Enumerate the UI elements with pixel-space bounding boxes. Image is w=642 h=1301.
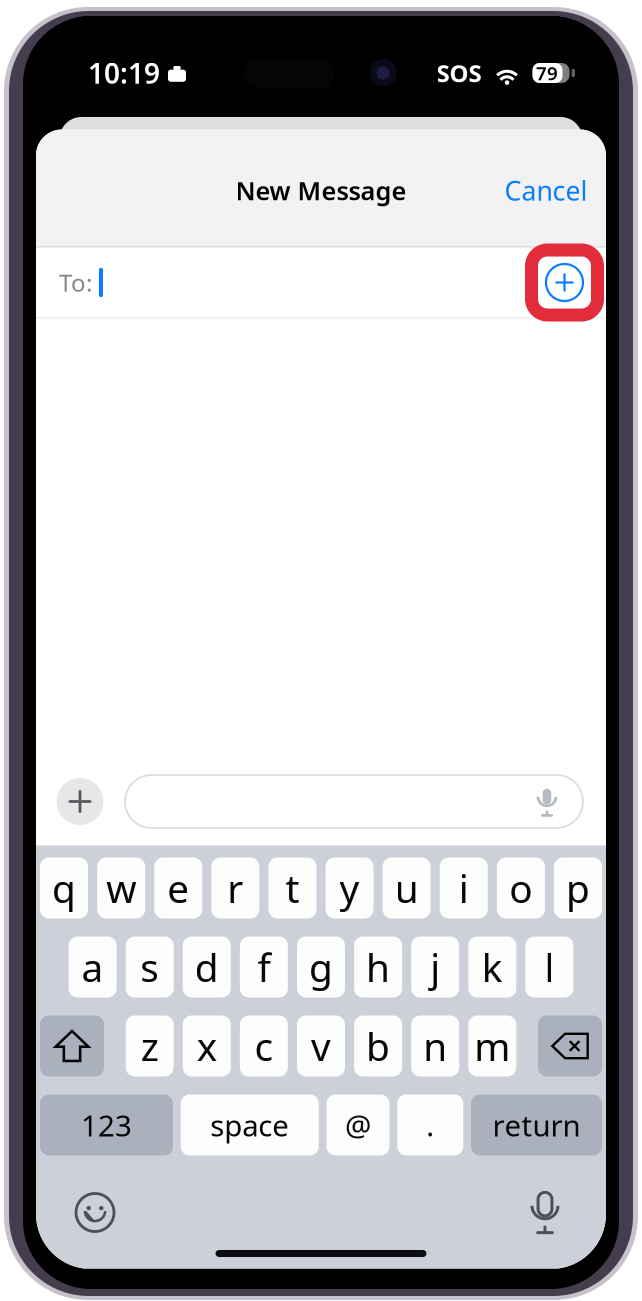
staticText: n: [423, 1020, 447, 1072]
staticText: 10:19: [88, 54, 160, 92]
staticText: l: [544, 941, 554, 993]
button[interactable]: q: [40, 857, 88, 918]
button[interactable]: y: [326, 857, 374, 918]
staticText: a: [82, 941, 104, 993]
staticText: space: [210, 1105, 289, 1144]
button[interactable]: d: [183, 936, 231, 997]
button[interactable]: r: [211, 857, 259, 918]
button[interactable]: x: [183, 1015, 231, 1076]
staticText: SOS: [436, 57, 481, 89]
staticText: To:: [59, 267, 92, 298]
button[interactable]: t: [268, 857, 316, 918]
button[interactable]: n: [411, 1015, 459, 1076]
staticText: t: [285, 862, 299, 914]
staticText: s: [140, 941, 159, 993]
button[interactable]: w: [97, 857, 145, 918]
staticText: 79: [536, 61, 558, 85]
staticText: m: [474, 1020, 510, 1072]
staticText: z: [141, 1020, 159, 1072]
button[interactable]: g: [297, 936, 345, 997]
button[interactable]: s: [126, 936, 174, 997]
button[interactable]: space: [181, 1094, 319, 1155]
staticText: r: [227, 862, 243, 914]
button[interactable]: u: [383, 857, 431, 918]
button[interactable]: p: [554, 857, 602, 918]
staticText: q: [52, 862, 76, 914]
staticText: w: [106, 862, 136, 914]
staticText: h: [366, 941, 390, 993]
button[interactable]: Emoji keyboard: [68, 1185, 122, 1239]
staticText: i: [459, 862, 469, 914]
staticText: k: [482, 941, 503, 993]
staticText: return: [492, 1105, 580, 1144]
button[interactable]: k: [468, 936, 516, 997]
button[interactable]: z: [126, 1015, 174, 1076]
staticText: e: [167, 862, 189, 914]
staticText: @: [345, 1105, 371, 1144]
staticText: j: [430, 941, 440, 993]
staticText: u: [395, 862, 419, 914]
button[interactable]: i: [440, 857, 488, 918]
button[interactable]: m: [468, 1015, 516, 1076]
button[interactable]: @: [326, 1094, 389, 1155]
staticText: v: [311, 1020, 331, 1072]
button[interactable]: Add contact: [531, 249, 597, 315]
button[interactable]: Shift: [40, 1015, 104, 1076]
staticText: x: [197, 1020, 217, 1072]
button[interactable]: a: [69, 936, 117, 997]
staticText: o: [509, 862, 532, 914]
button[interactable]: e: [154, 857, 202, 918]
staticText: .: [426, 1105, 434, 1144]
staticText: p: [566, 862, 590, 914]
button[interactable]: h: [354, 936, 402, 997]
button[interactable]: Add attachment: [56, 778, 103, 825]
button[interactable]: o: [497, 857, 545, 918]
staticText: y: [340, 862, 360, 914]
button[interactable]: Dictate: [518, 1185, 572, 1239]
staticText: Cancel: [504, 173, 587, 208]
staticText: f: [257, 941, 270, 993]
button[interactable]: Cancel: [498, 164, 594, 216]
button[interactable]: v: [297, 1015, 345, 1076]
staticText: d: [195, 941, 219, 993]
button[interactable]: b: [354, 1015, 402, 1076]
button[interactable]: j: [411, 936, 459, 997]
button[interactable]: .: [397, 1094, 463, 1155]
button[interactable]: c: [240, 1015, 288, 1076]
button[interactable]: l: [525, 936, 573, 997]
button[interactable]: Delete: [538, 1015, 602, 1076]
button[interactable]: return: [471, 1094, 602, 1155]
staticText: c: [254, 1020, 273, 1072]
staticText: New Message: [235, 174, 406, 207]
staticText: 123: [81, 1105, 132, 1144]
staticText: g: [309, 941, 333, 993]
staticText: b: [366, 1020, 390, 1072]
button[interactable]: f: [240, 936, 288, 997]
button[interactable]: 123: [40, 1094, 173, 1155]
